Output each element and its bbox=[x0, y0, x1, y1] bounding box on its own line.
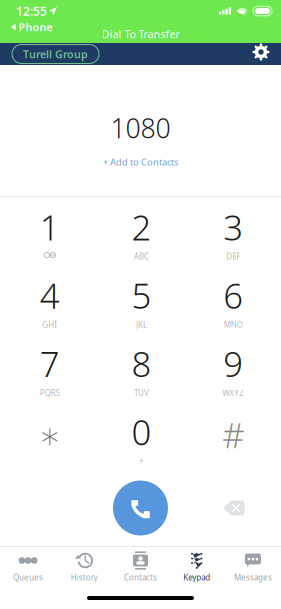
button[interactable]: 1 bbox=[4, 197, 96, 265]
staticText: 2 bbox=[131, 204, 151, 250]
button[interactable]: History bbox=[56, 547, 112, 566]
staticText: + bbox=[139, 456, 144, 466]
staticText: 7 bbox=[40, 340, 60, 386]
staticText: 0 bbox=[131, 409, 151, 455]
staticText: Queues bbox=[13, 572, 43, 583]
staticText: 8 bbox=[131, 340, 151, 386]
staticText: 1080 bbox=[110, 110, 170, 146]
staticText: JKL bbox=[136, 319, 147, 330]
staticText: Keypad bbox=[183, 572, 210, 583]
button[interactable]: 9 bbox=[187, 333, 279, 402]
staticText: 9 bbox=[223, 340, 243, 386]
button[interactable]: Keypad bbox=[169, 547, 225, 566]
button[interactable]: 3 bbox=[187, 197, 279, 265]
button[interactable]: Messages bbox=[225, 547, 281, 566]
button[interactable]: 8 bbox=[96, 333, 187, 402]
button[interactable]: Delete bbox=[214, 488, 254, 528]
staticText: Turell Group bbox=[23, 47, 88, 61]
staticText: GHI bbox=[42, 319, 57, 330]
staticText: Contacts bbox=[124, 572, 157, 583]
staticText: 1 bbox=[40, 204, 60, 250]
staticText: 6 bbox=[223, 272, 243, 318]
button[interactable]: Settings bbox=[250, 43, 272, 65]
button[interactable]: 2 bbox=[96, 197, 187, 265]
button[interactable]: Star bbox=[4, 402, 96, 470]
button[interactable]: Queues bbox=[0, 547, 56, 566]
button[interactable]: Turell Group bbox=[12, 44, 99, 63]
button[interactable]: 6 bbox=[187, 265, 279, 333]
button[interactable]: 7 bbox=[4, 333, 96, 402]
staticText: Messages bbox=[234, 572, 272, 583]
button[interactable]: 4 bbox=[4, 265, 96, 333]
button[interactable]: + Add to Contacts bbox=[103, 156, 178, 168]
button[interactable]: Call bbox=[113, 480, 168, 535]
staticText: DEF bbox=[226, 251, 240, 262]
staticText: History bbox=[71, 572, 98, 583]
button[interactable]: 5 bbox=[96, 265, 187, 333]
button[interactable]: Contacts bbox=[112, 547, 169, 566]
staticText: Phone bbox=[18, 20, 52, 34]
staticText: WXYZ bbox=[222, 387, 244, 398]
staticText: 4 bbox=[40, 272, 60, 318]
staticText: 3 bbox=[223, 204, 243, 250]
button[interactable]: 0 bbox=[96, 402, 187, 470]
staticText: MNO bbox=[224, 319, 243, 330]
staticText: + Add to Contacts bbox=[103, 156, 178, 168]
staticText: # bbox=[222, 412, 244, 458]
staticText: ABC bbox=[134, 251, 149, 262]
staticText: TUV bbox=[134, 387, 149, 398]
staticText: Dial To Transfer bbox=[101, 27, 179, 41]
staticText: 12:55 bbox=[16, 3, 47, 19]
button[interactable]: # bbox=[187, 402, 279, 470]
staticText: 5 bbox=[131, 272, 151, 318]
staticText: PQRS bbox=[40, 387, 60, 398]
